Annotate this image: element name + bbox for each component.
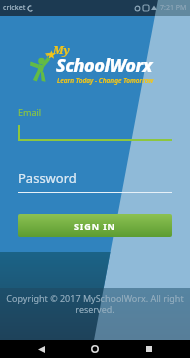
staticText: Password [18, 169, 77, 187]
staticText: 7:21 PM [160, 3, 187, 13]
button[interactable]: Home [82, 340, 108, 358]
staticText: Copyright © 2017 MySchoolWorx. All right… [0, 292, 190, 316]
staticText: cricket [3, 3, 26, 13]
staticText: Learn Today - Change Tomorrow [57, 76, 154, 85]
staticText: My [53, 42, 70, 57]
staticText: SchoolWorx [56, 53, 152, 78]
button[interactable]: Recents [136, 340, 162, 358]
button[interactable]: SIGN IN [18, 214, 172, 237]
staticText: Email [18, 106, 42, 118]
button[interactable]: Email [18, 106, 172, 141]
button[interactable]: Back [28, 340, 54, 358]
staticText: SIGN IN [74, 220, 116, 232]
button[interactable]: Password [18, 169, 172, 193]
